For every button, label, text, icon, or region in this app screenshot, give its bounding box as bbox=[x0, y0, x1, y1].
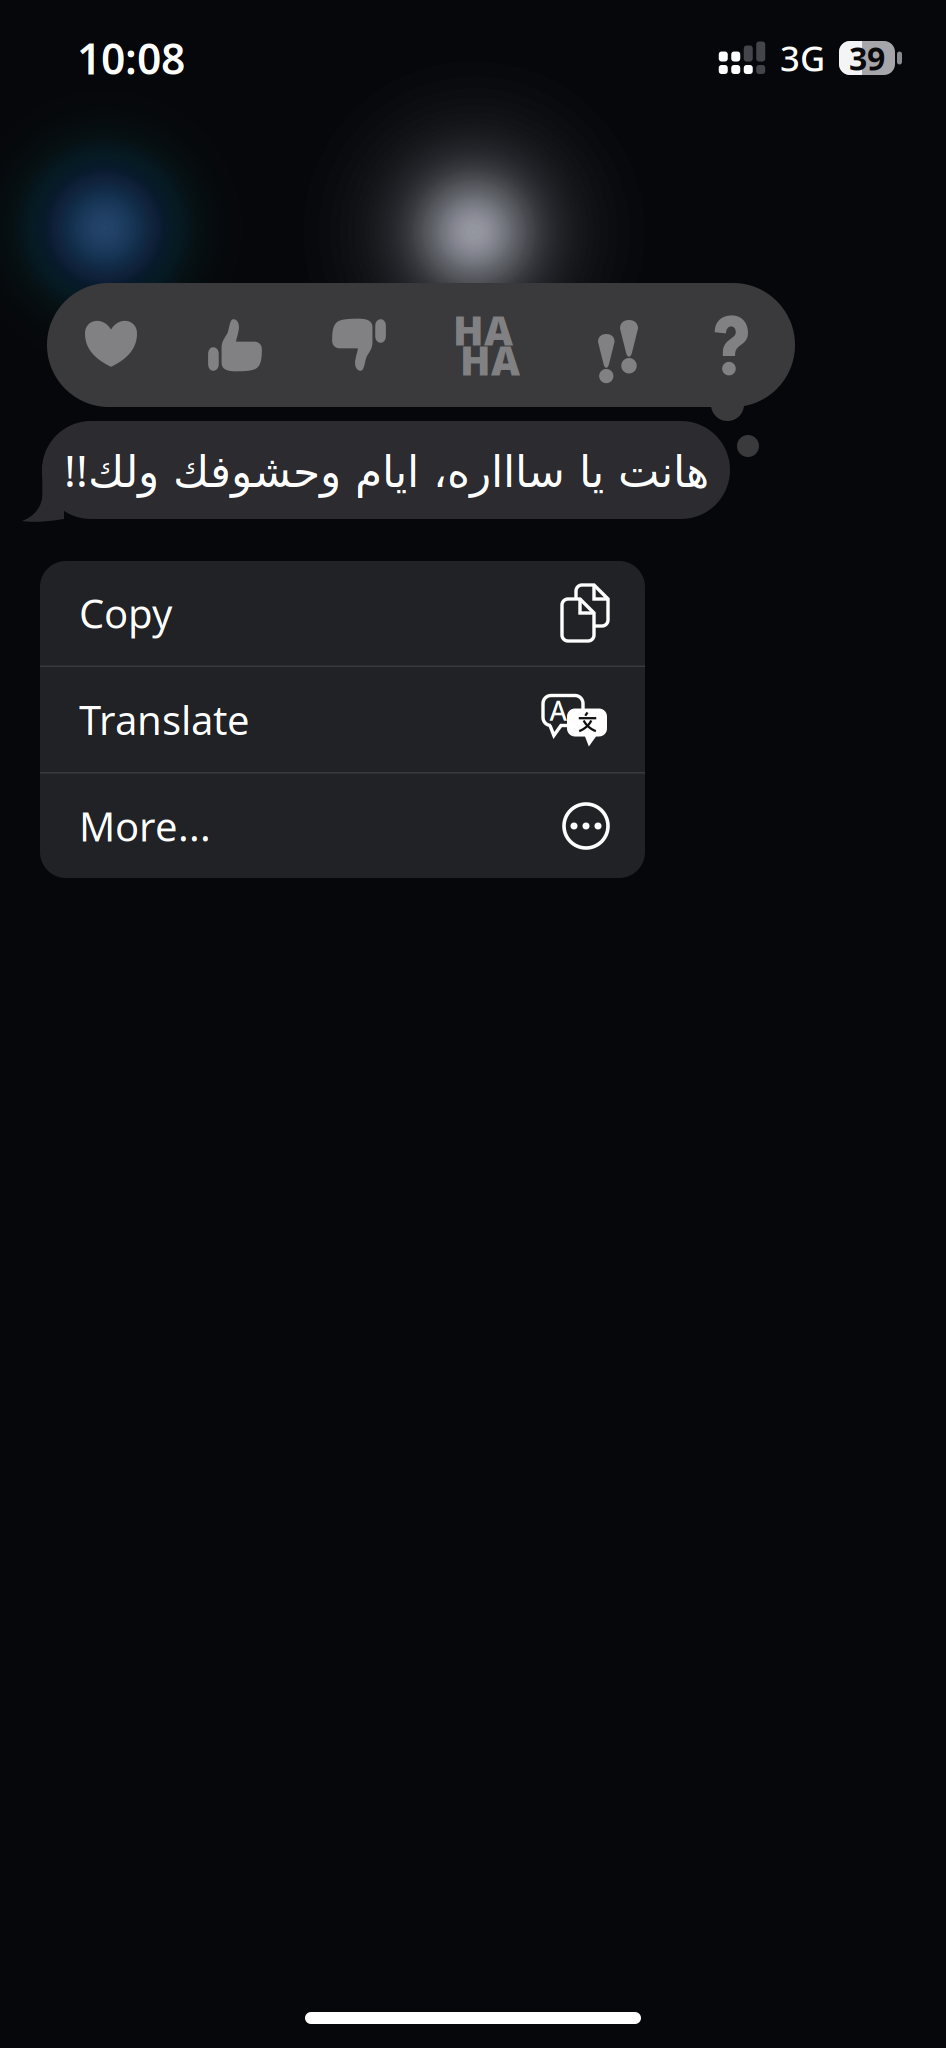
button[interactable]: Question bbox=[669, 283, 793, 407]
button[interactable]: Dislike bbox=[297, 283, 421, 407]
staticText: Translate bbox=[79, 693, 250, 746]
button[interactable]: More... bbox=[40, 773, 645, 878]
button[interactable]: Translate bbox=[40, 667, 645, 772]
staticText: 10:08 bbox=[77, 30, 185, 86]
staticText: HA bbox=[460, 333, 520, 386]
staticText: Copy bbox=[79, 586, 172, 639]
staticText: هانت يا ساااره، ايام وحشوفك ولك!! bbox=[63, 441, 708, 499]
button[interactable]: Copy bbox=[40, 560, 645, 665]
staticText: HA bbox=[453, 303, 513, 356]
button[interactable]: Haha bbox=[421, 283, 545, 407]
staticText: More... bbox=[79, 799, 211, 852]
button[interactable]: Love bbox=[49, 283, 173, 407]
staticText: A bbox=[549, 693, 566, 728]
staticText: 39 bbox=[849, 37, 885, 79]
staticText: 3G bbox=[780, 35, 825, 81]
button[interactable]: Like bbox=[173, 283, 297, 407]
button[interactable]: Exclamation bbox=[545, 283, 669, 407]
